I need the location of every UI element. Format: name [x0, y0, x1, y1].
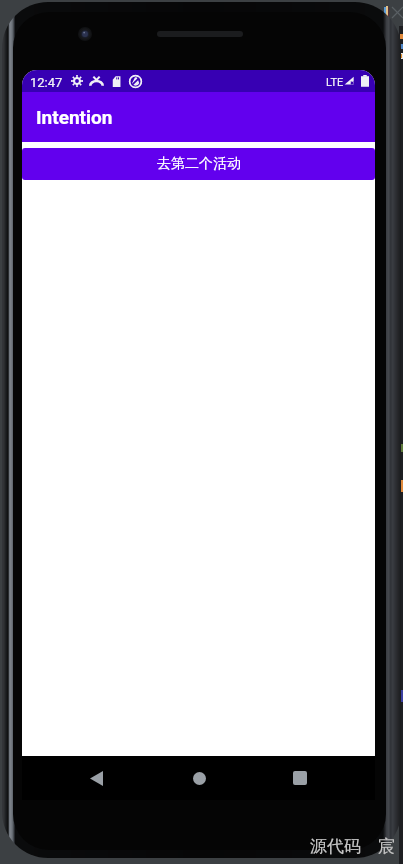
staticText: 源代码 宸	[310, 834, 395, 857]
button[interactable]: 去第二个活动	[22, 148, 375, 180]
staticText: Intention	[36, 106, 113, 128]
staticText: LTE	[326, 76, 344, 89]
button[interactable]: Intention	[22, 92, 375, 142]
button[interactable]: Recent apps	[278, 756, 322, 800]
button[interactable]: Home	[177, 756, 221, 800]
staticText: 12:47	[30, 75, 63, 90]
button[interactable]: Back	[74, 756, 118, 800]
staticText: 去第二个活动	[157, 155, 241, 173]
